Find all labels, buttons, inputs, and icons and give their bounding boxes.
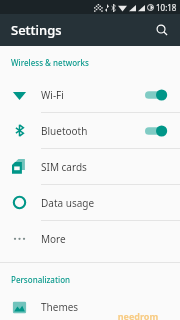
button[interactable]: Toggle: [145, 88, 169, 102]
staticText: Wi-Fi: [41, 88, 145, 102]
staticText: Personalization: [11, 274, 71, 285]
staticText: SIM cards: [41, 160, 169, 174]
button[interactable]: Themes: [0, 294, 180, 320]
staticText: Bluetooth: [41, 124, 145, 138]
button[interactable]: More: [0, 221, 180, 256]
button[interactable]: Bluetooth: [0, 113, 180, 148]
staticText: More: [41, 232, 169, 246]
button[interactable]: Wi-Fi: [0, 77, 180, 112]
staticText: Themes: [41, 300, 169, 314]
button[interactable]: SIM cards: [0, 149, 180, 184]
button[interactable]: Data usage: [0, 185, 180, 220]
staticText: 10:18: [156, 2, 177, 13]
staticText: Wireless & networks: [11, 57, 89, 68]
staticText: Settings: [11, 21, 62, 39]
staticText: Data usage: [41, 196, 169, 210]
button[interactable]: Toggle: [145, 124, 169, 138]
button[interactable]: Search: [150, 18, 174, 42]
staticText: needrom: [104, 310, 172, 320]
